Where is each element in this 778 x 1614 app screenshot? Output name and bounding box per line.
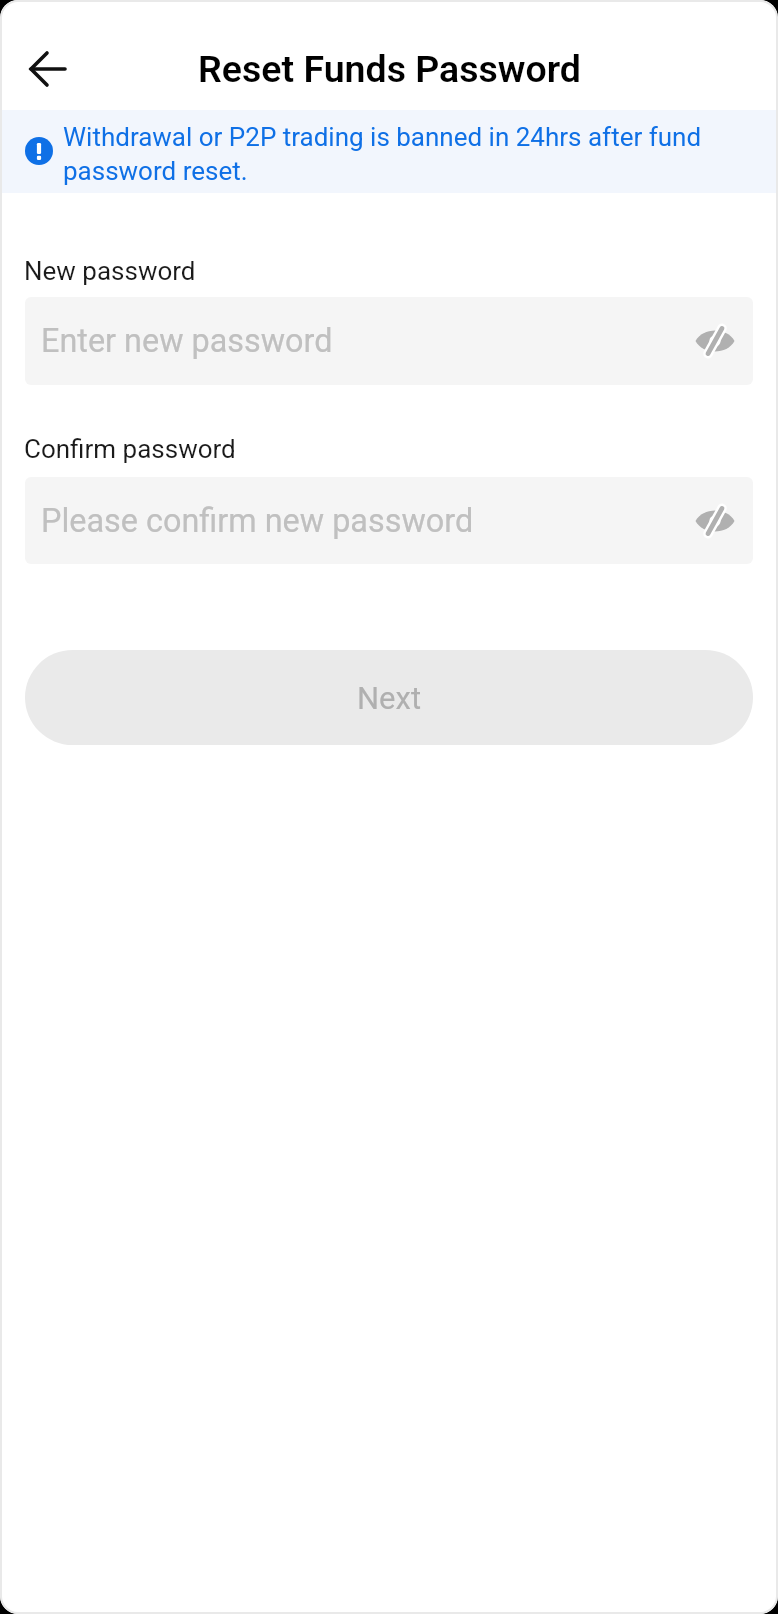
button[interactable]: Back [14,35,82,103]
button[interactable]: Enter new password [25,297,753,385]
staticText: Please confirm new password [41,502,474,540]
button[interactable]: Show password [691,497,739,545]
staticText: Withdrawal or P2P trading is banned in 2… [63,122,753,186]
staticText: Reset Funds Password [198,47,581,91]
staticText: Confirm password [24,434,236,464]
staticText: Next [357,680,422,716]
button[interactable]: Please confirm new password [25,477,753,564]
staticText: Enter new password [41,322,333,360]
button[interactable]: Next [25,650,753,745]
staticText: New password [24,256,196,286]
button[interactable]: Show password [691,317,739,365]
